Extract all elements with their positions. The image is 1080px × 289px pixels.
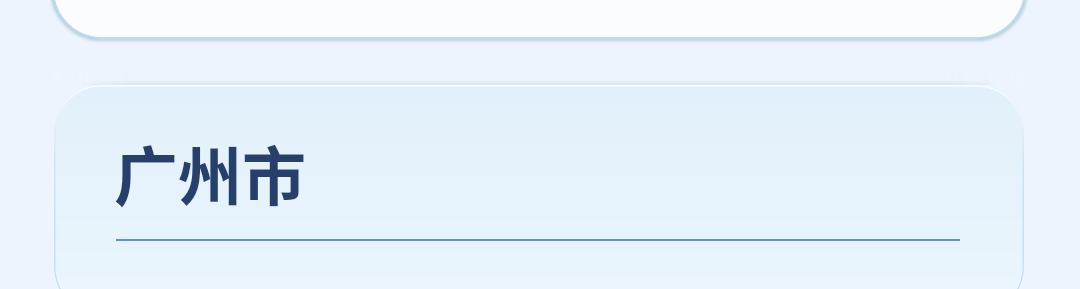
button[interactable]: 广州市 <box>54 85 1024 289</box>
button[interactable] <box>54 0 1024 37</box>
staticText: 广州市 <box>114 126 306 219</box>
